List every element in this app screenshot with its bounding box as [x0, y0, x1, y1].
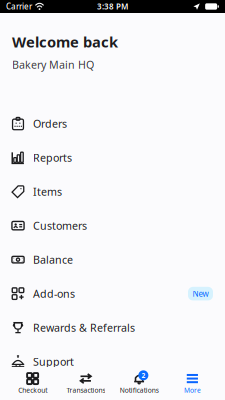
button[interactable]: Balance — [0, 243, 225, 277]
staticText: Bakery Main HQ — [12, 57, 94, 72]
staticText: Add-ons — [33, 287, 75, 301]
button[interactable]: Rewards & Referrals — [0, 311, 225, 345]
staticText: Balance — [33, 253, 73, 267]
button[interactable]: Transactions — [59, 366, 112, 400]
staticText: Rewards & Referrals — [33, 321, 135, 335]
button[interactable]: Add-ons — [0, 277, 225, 311]
staticText: Reports — [33, 151, 72, 165]
staticText: 2 — [141, 371, 145, 380]
staticText: Orders — [33, 117, 67, 131]
staticText: Welcome back — [12, 32, 118, 51]
staticText: Transactions — [66, 386, 105, 395]
staticText: Items — [33, 185, 62, 199]
button[interactable]: Reports — [0, 141, 225, 175]
button[interactable]: Orders — [0, 107, 225, 141]
staticText: Customers — [33, 219, 87, 233]
staticText: Carrier — [6, 1, 32, 12]
button[interactable]: Checkout — [6, 366, 59, 400]
button[interactable]: Customers — [0, 209, 225, 243]
staticText: More — [184, 386, 201, 395]
staticText: 3:38 PM — [97, 1, 128, 12]
staticText: Checkout — [18, 386, 47, 395]
staticText: Notifications — [120, 386, 159, 395]
button[interactable]: More — [166, 366, 219, 400]
button[interactable]: Support — [0, 345, 225, 379]
button[interactable]: 2 — [112, 366, 166, 400]
staticText: Support — [33, 355, 74, 369]
staticText: New — [192, 288, 208, 299]
button[interactable]: Items — [0, 175, 225, 209]
